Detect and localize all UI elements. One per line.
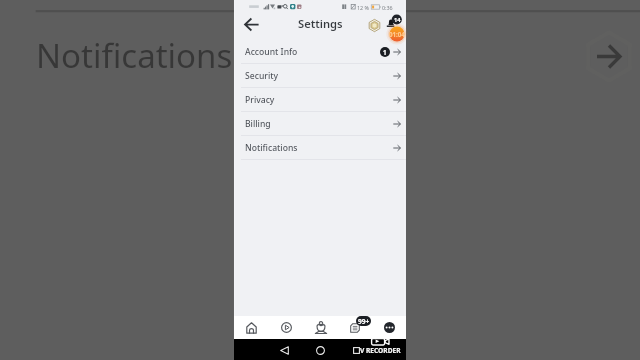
button[interactable]: Rewards: [366, 17, 382, 33]
button[interactable]: Account Info: [234, 40, 406, 64]
button[interactable]: Home: [234, 316, 269, 339]
button[interactable]: Notifications: [385, 13, 404, 32]
staticText: Privacy: [245, 94, 275, 106]
staticText: V RECORDER: [360, 346, 401, 355]
staticText: 14: [394, 16, 401, 24]
button[interactable]: Videos: [269, 316, 304, 339]
button[interactable]: Home: [313, 343, 327, 357]
staticText: Security: [245, 70, 279, 82]
staticText: Notifications: [36, 33, 233, 78]
staticText: 1: [383, 48, 387, 56]
button[interactable]: Privacy: [234, 88, 406, 112]
staticText: 99+: [358, 317, 370, 326]
staticText: 0:36: [382, 4, 393, 11]
staticText: Settings: [298, 16, 343, 31]
staticText: 01:04: [389, 30, 405, 38]
button[interactable]: News: [338, 316, 372, 339]
staticText: Billing: [245, 118, 271, 130]
button[interactable]: Back: [277, 343, 291, 357]
button[interactable]: Security: [234, 64, 406, 88]
button[interactable]: Notifications: [234, 136, 406, 160]
staticText: Account Info: [245, 46, 298, 58]
staticText: 12 %: [357, 4, 370, 11]
button[interactable]: More: [372, 316, 406, 339]
button[interactable]: Rewards: [304, 316, 338, 339]
button[interactable]: Recents: [349, 343, 363, 357]
button[interactable]: Billing: [234, 112, 406, 136]
button[interactable]: Recording timer: [386, 23, 408, 45]
button[interactable]: Back: [241, 14, 262, 35]
staticText: Notifications: [245, 142, 298, 154]
